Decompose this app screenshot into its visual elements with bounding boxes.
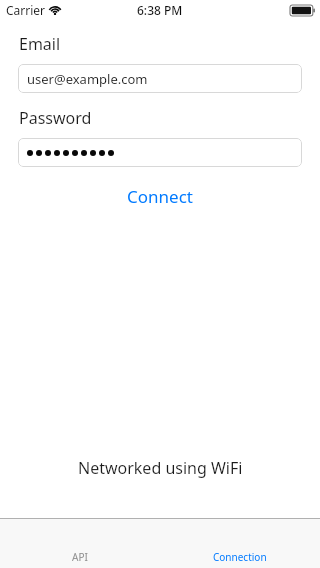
button[interactable]: user@example.com (18, 64, 302, 93)
other: WiFi signal (48, 3, 62, 17)
staticText: Carrier (6, 2, 46, 18)
button[interactable]: Connection (160, 519, 320, 568)
staticText: user@example.com (27, 70, 148, 88)
staticText: Connect (127, 185, 193, 208)
staticText: Networked using WiFi (78, 457, 243, 479)
button[interactable]: API (0, 519, 160, 568)
staticText: Connection (213, 550, 267, 564)
staticText: Email (19, 33, 61, 55)
staticText: Password (19, 107, 92, 129)
staticText: API (72, 550, 88, 564)
other: Battery full (290, 5, 315, 16)
staticText: 6:38 PM (137, 2, 183, 18)
button[interactable] (18, 138, 302, 167)
button[interactable]: Connect (0, 183, 320, 209)
